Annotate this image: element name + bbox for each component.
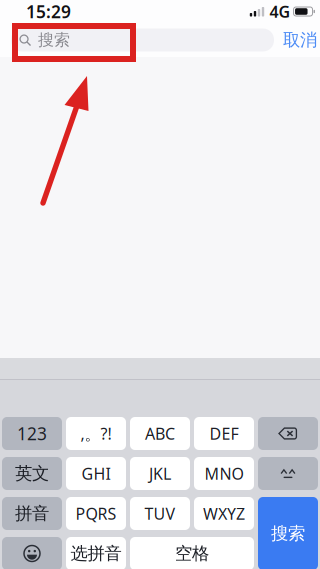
button[interactable]: 拼音 — [2, 497, 62, 530]
staticText: DEF — [209, 423, 238, 444]
button[interactable]: GHI — [66, 457, 126, 490]
staticText: 空格 — [175, 543, 209, 564]
staticText: 英文 — [15, 463, 49, 484]
button[interactable]: 选拼音 — [66, 537, 126, 569]
button[interactable]: 英文 — [2, 457, 62, 490]
staticText: GHI — [81, 463, 110, 484]
button[interactable]: 空格 — [130, 537, 254, 569]
staticText: 取消 — [283, 29, 317, 51]
button[interactable]: 取消 — [283, 28, 317, 51]
button[interactable]: JKL — [130, 457, 190, 490]
button[interactable]: 表情 — [2, 537, 62, 569]
button[interactable]: 123 — [2, 417, 62, 450]
button[interactable]: ,。?! — [66, 417, 126, 450]
button[interactable]: DEF — [194, 417, 254, 450]
button[interactable]: ABC — [130, 417, 190, 450]
button[interactable]: PQRS — [66, 497, 126, 530]
staticText: 搜索 — [38, 30, 70, 50]
staticText: 选拼音 — [70, 543, 121, 564]
staticText: 搜索 — [271, 523, 305, 544]
staticText: 123 — [17, 422, 47, 445]
staticText: PQRS — [75, 503, 116, 524]
staticText: ABC — [145, 423, 175, 444]
button[interactable]: 搜索 — [258, 497, 318, 569]
staticText: 4G — [269, 1, 290, 22]
staticText: 15:29 — [26, 0, 71, 23]
staticText: TUV — [144, 503, 175, 524]
staticText: JKL — [149, 463, 171, 484]
staticText: 拼音 — [15, 503, 49, 524]
button[interactable]: 颜文字 — [258, 457, 318, 490]
button[interactable]: MNO — [194, 457, 254, 490]
staticText: MNO — [204, 463, 243, 484]
button[interactable]: 搜索 — [11, 28, 274, 51]
button[interactable]: TUV — [130, 497, 190, 530]
staticText: ,。?! — [80, 423, 111, 444]
button[interactable]: WXYZ — [194, 497, 254, 530]
button[interactable]: 删除 — [258, 417, 318, 450]
staticText: WXYZ — [203, 503, 245, 524]
